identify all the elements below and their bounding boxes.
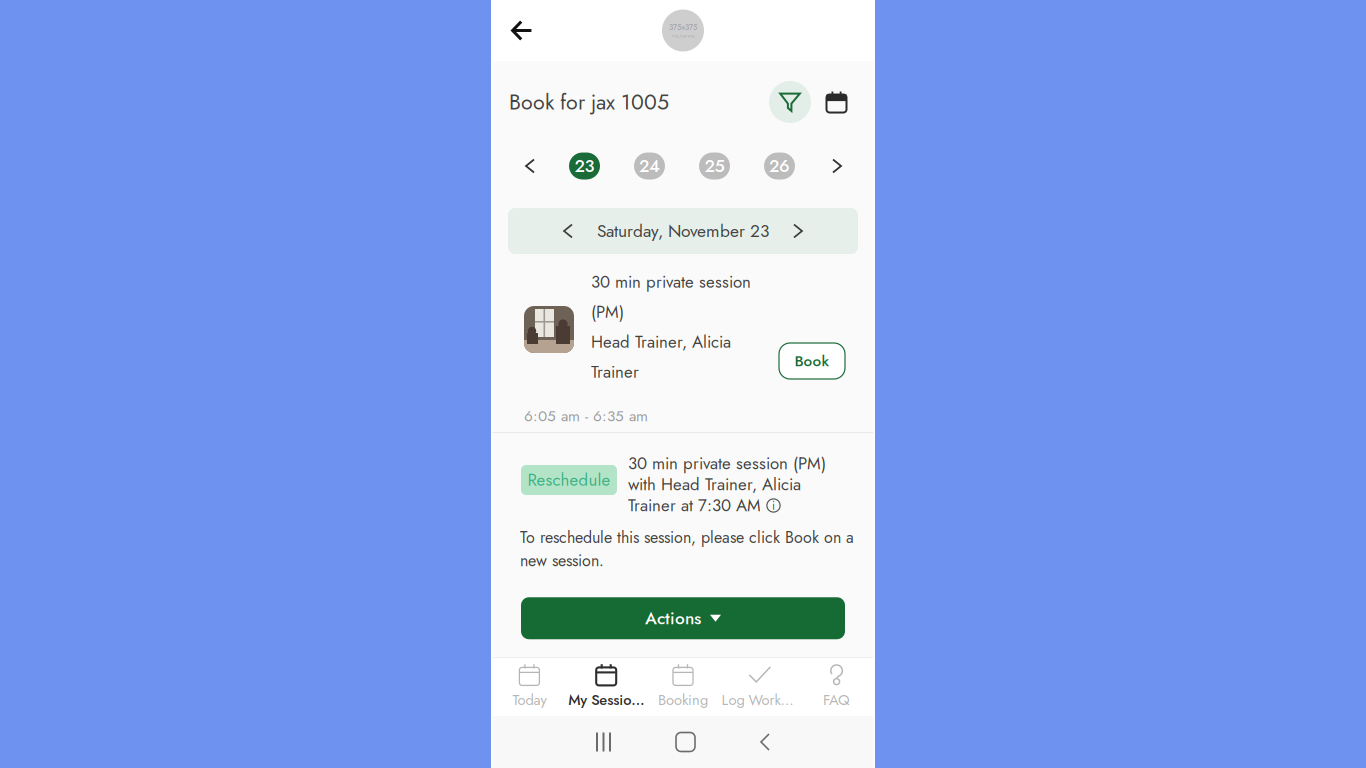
staticText: 24 [639,153,660,178]
button[interactable]: Booking [645,661,721,713]
button[interactable]: 25 [699,152,730,179]
button[interactable]: Today [491,661,568,713]
staticText: Trainer [591,360,639,384]
button[interactable]: My Sessio… [568,661,645,713]
button[interactable]: FAQ [798,661,875,713]
button[interactable]: Log Worko… [721,661,798,713]
button[interactable]: 26 [764,152,795,179]
staticText: Today [512,689,546,711]
staticText: FAQ [823,689,850,711]
button[interactable]: Previous dates [510,149,535,183]
button[interactable]: Calendar [811,81,862,123]
staticText: i [772,497,775,514]
staticText: 26 [769,153,790,178]
staticText: Saturday, November 23 [597,218,769,243]
button[interactable]: 23 [569,152,600,179]
staticText: Trainer at 7:30 AM [628,493,761,518]
staticText: with Head Trainer, Alicia [628,472,801,497]
button[interactable]: Next day [780,208,858,254]
staticText: My Sessio… [568,689,644,711]
button[interactable]: Actions [521,572,845,639]
button[interactable]: Back [491,0,540,61]
staticText: Log Worko… [721,689,798,711]
staticText: Book for jax 1005 [509,87,669,117]
button[interactable]: 24 [634,152,665,179]
staticText: 6:05 am - 6:35 am [524,405,648,427]
staticText: Actions [645,606,701,631]
staticText: To reschedule this session, please click… [520,526,854,572]
staticText: Reschedule [527,468,610,492]
staticText: 25 [704,153,724,178]
staticText: 375×375 [669,22,697,33]
staticText: 30 min private session (PM) [628,451,826,476]
staticText: img_logo.png [672,33,694,39]
button[interactable]: Book [779,343,845,379]
staticText: Head Trainer, Alicia [591,330,731,354]
staticText: (PM) [591,300,624,324]
button[interactable]: Previous day [508,208,586,254]
staticText: Book [794,350,829,372]
staticText: 30 min private session [591,270,751,294]
button[interactable]: Next dates [832,149,857,183]
staticText: 23 [574,153,594,178]
staticText: Booking [658,689,708,711]
button[interactable]: Filter [769,81,811,123]
